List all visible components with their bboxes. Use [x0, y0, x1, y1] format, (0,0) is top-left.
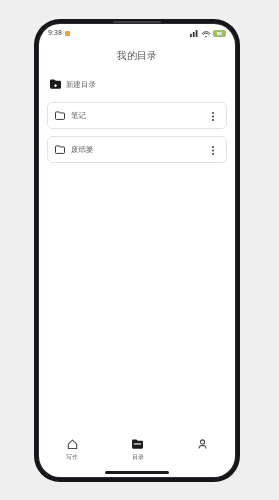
staticText: 我的目录: [117, 49, 157, 62]
staticText: 新建目录: [66, 80, 96, 89]
staticText: 废纸篓: [71, 145, 94, 154]
button[interactable]: More options: [207, 106, 219, 126]
button[interactable]: 写作: [39, 433, 105, 467]
button[interactable]: 目录: [105, 433, 170, 467]
staticText: 目录: [132, 453, 144, 461]
button[interactable]: 废纸篓: [47, 136, 227, 163]
button[interactable]: 笔记: [47, 102, 227, 129]
staticText: 写作: [66, 453, 78, 461]
staticText: 9:38: [48, 28, 62, 38]
button[interactable]: More options: [207, 140, 219, 160]
button[interactable]: 新建目录: [39, 74, 235, 94]
staticText: 笔记: [71, 111, 86, 120]
staticText: 83: [217, 31, 222, 36]
button[interactable]: Profile: [170, 433, 235, 467]
